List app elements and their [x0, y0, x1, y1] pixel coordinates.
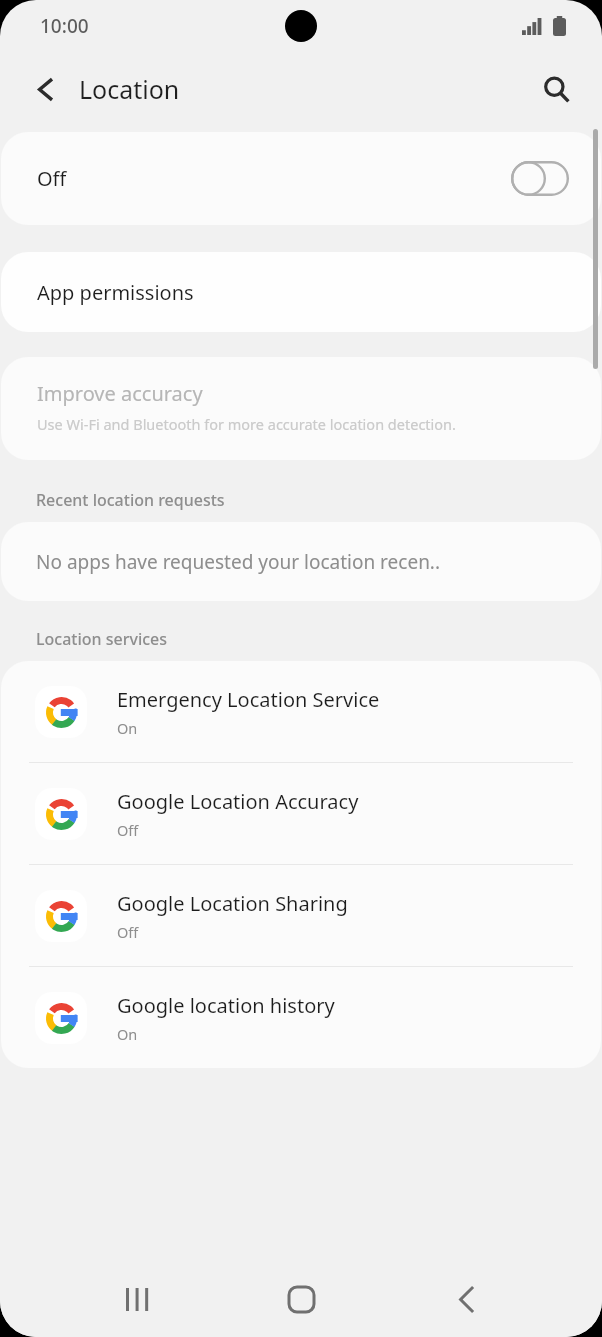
staticText: Google Location Accuracy [117, 788, 359, 815]
staticText: Google location history [117, 992, 335, 1019]
staticText: Off [117, 922, 139, 942]
button[interactable]: Recent apps [106, 1269, 166, 1329]
button[interactable]: Google location history [1, 967, 601, 1068]
staticText: No apps have requested your location rec… [36, 549, 441, 575]
staticText: Google Location Sharing [117, 890, 348, 917]
staticText: Off [117, 820, 139, 840]
staticText: On [117, 1024, 138, 1044]
button[interactable]: Off [1, 132, 601, 225]
button[interactable]: No apps have requested your location rec… [1, 522, 601, 601]
staticText: 10:00 [40, 13, 89, 39]
button[interactable]: Back [437, 1269, 497, 1329]
staticText: Use Wi-Fi and Bluetooth for more accurat… [37, 414, 456, 434]
staticText: Improve accuracy [37, 380, 203, 407]
button[interactable]: Emergency Location Service [1, 661, 601, 762]
staticText: Location [79, 72, 180, 106]
button[interactable]: Google Location Sharing [1, 865, 601, 966]
button[interactable]: Home [271, 1269, 331, 1329]
button[interactable]: App permissions [1, 252, 601, 332]
staticText: App permissions [37, 279, 194, 306]
button[interactable]: Google Location Accuracy [1, 763, 601, 864]
button[interactable]: Search [532, 65, 580, 113]
staticText: Location services [36, 628, 168, 650]
button[interactable]: Location toggle, off [511, 161, 569, 196]
staticText: On [117, 718, 138, 738]
staticText: Off [37, 165, 67, 192]
staticText: Recent location requests [36, 489, 225, 511]
staticText: Emergency Location Service [117, 686, 380, 713]
button[interactable]: Improve accuracy [1, 357, 601, 460]
button[interactable]: Navigate up [22, 65, 70, 113]
